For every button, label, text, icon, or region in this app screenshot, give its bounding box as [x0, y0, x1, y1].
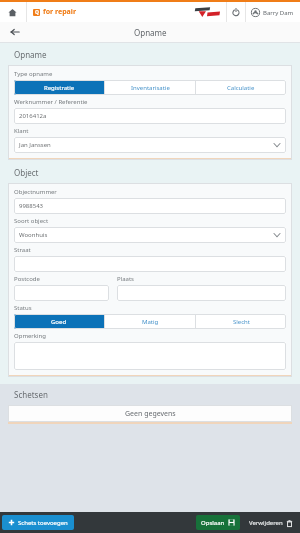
staticText: Q [35, 9, 39, 16]
button[interactable]: Back [8, 25, 22, 39]
button[interactable] [117, 285, 286, 301]
button[interactable]: Woonhuis [14, 227, 286, 243]
button[interactable]: Slecht [196, 314, 286, 329]
staticText: Opname [14, 49, 47, 60]
staticText: Plaats [117, 275, 134, 283]
staticText: Opname [134, 27, 167, 38]
staticText: Opslaan [201, 519, 225, 527]
staticText: Straat [14, 246, 31, 254]
staticText: Goed [51, 318, 67, 326]
staticText: Matig [142, 318, 159, 326]
button[interactable]: Power [227, 3, 245, 21]
staticText: Verwijderen [249, 519, 283, 527]
staticText: Klant [14, 127, 29, 135]
staticText: Opmerking [14, 332, 46, 340]
button[interactable]: Matig [105, 314, 195, 329]
staticText: Schetsen [14, 389, 48, 400]
button[interactable]: Calculatie [196, 80, 286, 95]
button[interactable] [14, 285, 109, 301]
staticText: Slecht [233, 318, 250, 326]
button[interactable]: Goed [14, 314, 104, 329]
staticText: Soort object [14, 217, 49, 225]
button[interactable]: Registratie [14, 80, 104, 95]
staticText: Object [14, 167, 39, 178]
staticText: Woonhuis [19, 231, 48, 239]
staticText: Werknummer / Referentie [14, 98, 88, 106]
button[interactable] [14, 256, 286, 272]
staticText: 2016412a [19, 112, 47, 120]
staticText: Jan Janssen [19, 141, 51, 149]
button[interactable]: 2016412a [14, 108, 286, 124]
staticText: for repair [43, 7, 77, 17]
button[interactable]: Schets toevoegen [2, 515, 74, 530]
button[interactable]: Geen gegevens [8, 405, 292, 422]
staticText: Objectnummer [14, 188, 57, 196]
staticText: Barry Dam [263, 9, 294, 17]
staticText: 9988543 [19, 202, 44, 210]
staticText: Schets toevoegen [18, 519, 68, 527]
staticText: Registratie [44, 84, 75, 92]
button[interactable]: Jan Janssen [14, 137, 286, 153]
button[interactable]: Barry Dam [251, 8, 294, 17]
button[interactable]: 9988543 [14, 198, 286, 214]
staticText: Type opname [14, 70, 53, 78]
staticText: Status [14, 304, 32, 312]
button[interactable]: Home [6, 6, 18, 18]
staticText: Geen gegevens [125, 409, 176, 419]
button[interactable]: Verwijderen [246, 516, 296, 530]
button[interactable]: Inventarisatie [105, 80, 195, 95]
staticText: Calculatie [227, 84, 255, 92]
button[interactable] [14, 342, 286, 370]
staticText: Postcode [14, 275, 40, 283]
button[interactable]: Opslaan [196, 515, 240, 530]
staticText: Inventarisatie [131, 84, 170, 92]
